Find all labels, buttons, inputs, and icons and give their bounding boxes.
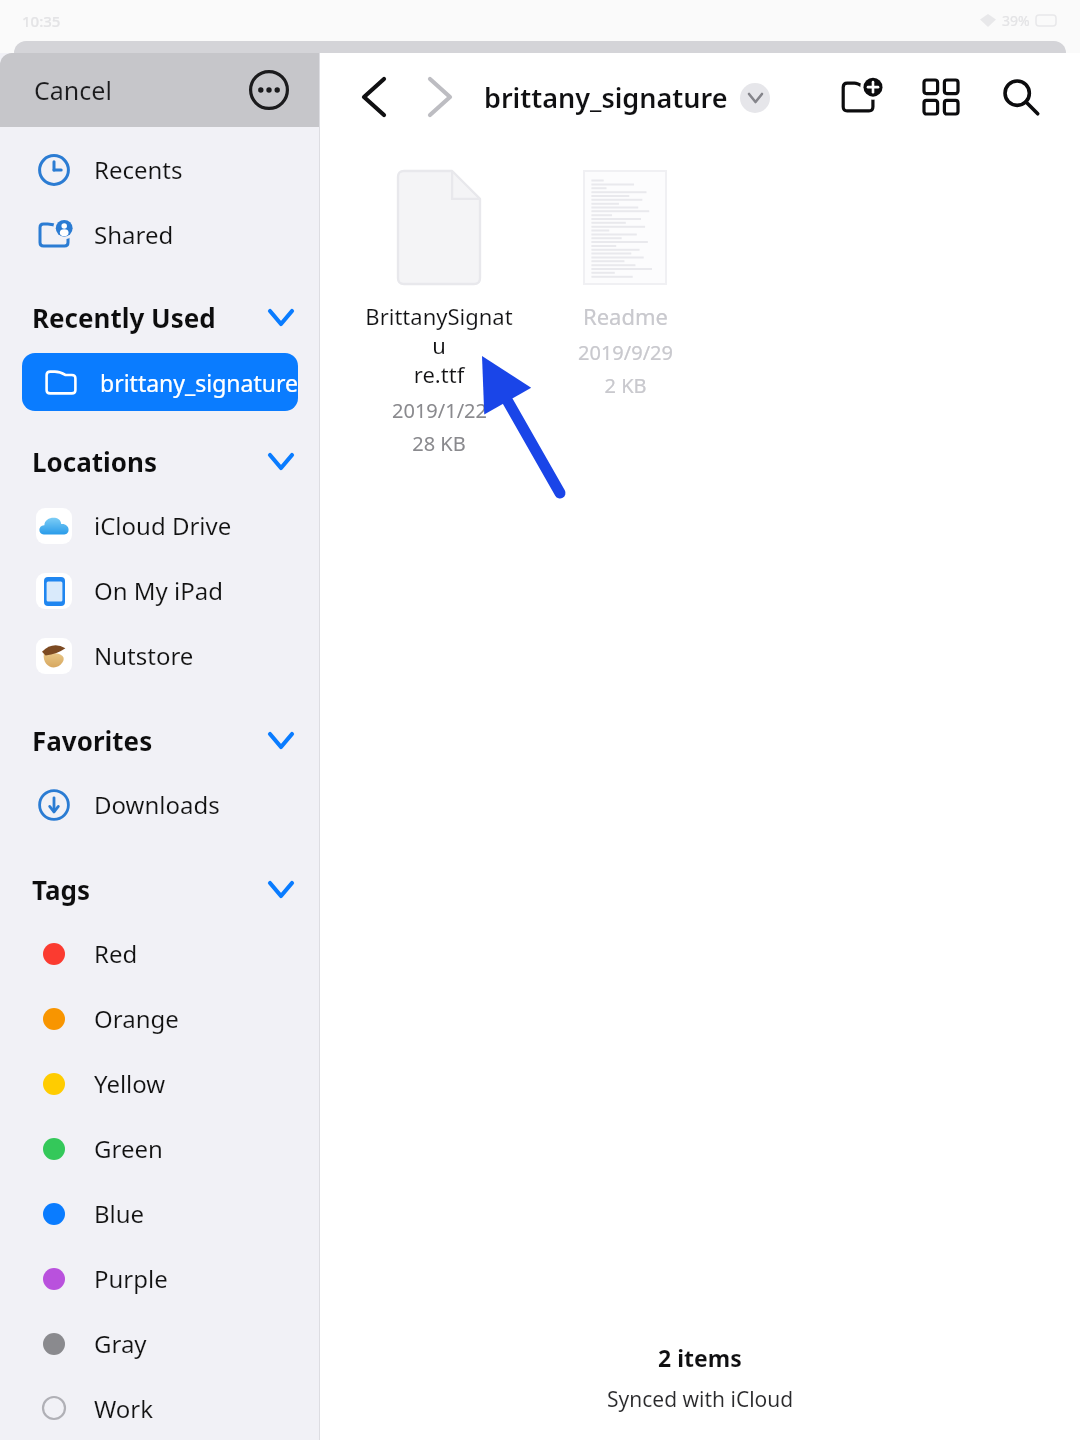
staticText: On My iPad (94, 574, 223, 607)
staticText: 2019/9/29 (578, 339, 673, 366)
button[interactable]: Blue (0, 1181, 320, 1246)
button[interactable]: brittany_signature (22, 353, 298, 411)
staticText: Yellow (94, 1067, 166, 1100)
button[interactable]: Cancel (20, 65, 126, 115)
staticText: Recently Used (32, 300, 216, 335)
staticText: 10:35 (22, 11, 61, 31)
staticText: Tags (32, 872, 90, 907)
staticText: 28 KB (412, 430, 466, 457)
staticText: iCloud Drive (94, 509, 232, 542)
button[interactable]: New folder (832, 68, 890, 126)
button[interactable]: Favorites (0, 712, 320, 768)
button[interactable]: Readme (550, 163, 700, 403)
button[interactable]: Tags (0, 861, 320, 917)
staticText: Nutstore (94, 639, 194, 672)
button[interactable]: Shared (0, 202, 320, 267)
staticText: Red (94, 937, 138, 970)
staticText: 39% (1002, 11, 1030, 30)
button[interactable]: Work (0, 1376, 320, 1440)
staticText: Downloads (94, 788, 220, 821)
button[interactable]: Purple (0, 1246, 320, 1311)
button[interactable]: Recently Used (0, 289, 320, 345)
button[interactable]: Back (348, 71, 400, 123)
button[interactable]: Locations (0, 433, 320, 489)
button[interactable]: Yellow (0, 1051, 320, 1116)
button[interactable]: Green (0, 1116, 320, 1181)
staticText: brittany_signature (484, 79, 728, 116)
button[interactable]: Forward (414, 71, 466, 123)
staticText: 2 KB (604, 372, 647, 399)
button[interactable]: Orange (0, 986, 320, 1051)
staticText: Purple (94, 1262, 168, 1295)
button[interactable]: Search (992, 68, 1050, 126)
staticText: Locations (32, 444, 158, 479)
button[interactable]: iCloud Drive (0, 493, 320, 558)
staticText: Blue (94, 1197, 145, 1230)
staticText: Cancel (34, 73, 112, 107)
button[interactable]: On My iPad (0, 558, 320, 623)
staticText: BrittanySignatu re.ttf (364, 301, 514, 389)
button[interactable]: brittany_signature (480, 75, 774, 120)
button[interactable]: Downloads (0, 772, 320, 837)
button[interactable]: More options (246, 67, 292, 113)
button[interactable]: Red (0, 921, 320, 986)
staticText: Recents (94, 153, 183, 186)
button[interactable]: Gray (0, 1311, 320, 1376)
button[interactable]: BrittanySignatu re.ttf (364, 163, 514, 461)
staticText: brittany_signature (100, 367, 298, 398)
staticText: Readme (583, 301, 668, 331)
staticText: 2 items (658, 1342, 742, 1373)
staticText: Green (94, 1132, 163, 1165)
staticText: Orange (94, 1002, 179, 1035)
staticText: Shared (94, 218, 174, 251)
staticText: Favorites (32, 723, 153, 758)
button[interactable]: Recents (0, 137, 320, 202)
staticText: Synced with iCloud (607, 1385, 794, 1414)
staticText: Work (94, 1392, 154, 1425)
staticText: Gray (94, 1327, 147, 1360)
button[interactable]: Change view (912, 68, 970, 126)
staticText: 2019/1/22 (392, 397, 487, 424)
button[interactable]: Nutstore (0, 623, 320, 688)
